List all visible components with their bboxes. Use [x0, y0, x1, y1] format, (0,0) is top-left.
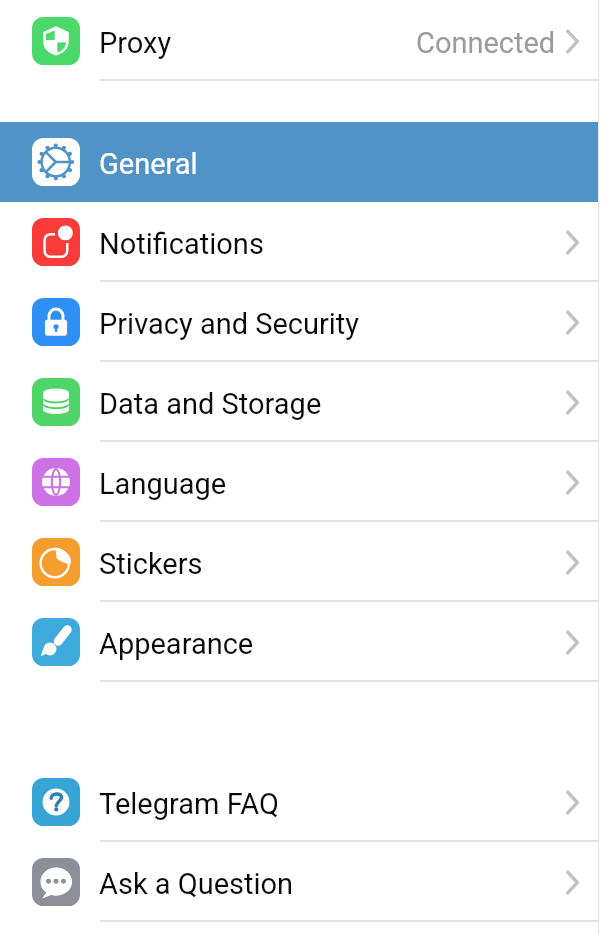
button[interactable]: Ask a Question [0, 842, 598, 922]
button[interactable]: Proxy [0, 1, 598, 81]
button[interactable]: Privacy and Security [0, 282, 598, 362]
staticText: Stickers [99, 547, 203, 581]
staticText: Ask a Question [99, 867, 294, 901]
button[interactable]: Appearance [0, 602, 598, 682]
button[interactable]: Language [0, 442, 598, 522]
button[interactable]: Data and Storage [0, 362, 598, 442]
staticText: Data and Storage [99, 387, 322, 421]
staticText: General [99, 147, 198, 181]
button[interactable]: General [0, 122, 598, 202]
button[interactable]: Stickers [0, 522, 598, 602]
button[interactable]: Notifications [0, 202, 598, 282]
staticText: Telegram FAQ [99, 787, 279, 821]
staticText: Connected [416, 26, 556, 60]
staticText: Language [99, 467, 227, 501]
staticText: Notifications [99, 227, 264, 261]
staticText: Privacy and Security [99, 307, 360, 341]
staticText: Appearance [99, 627, 254, 661]
button[interactable]: Telegram FAQ [0, 762, 598, 842]
staticText: Proxy [99, 26, 172, 60]
